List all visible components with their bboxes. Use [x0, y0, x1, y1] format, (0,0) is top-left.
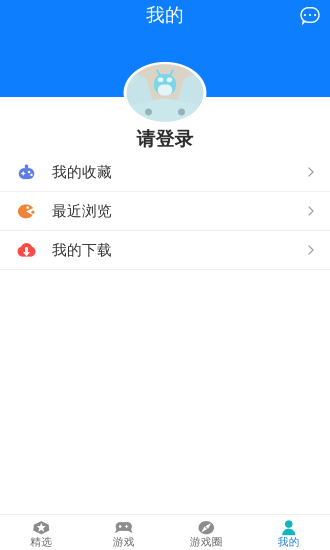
- button[interactable]: Messages: [300, 6, 330, 24]
- button[interactable]: 我的: [247, 515, 330, 550]
- button[interactable]: 游戏: [82, 515, 165, 550]
- staticText: 请登录: [136, 127, 193, 150]
- staticText: 最近浏览: [52, 202, 112, 220]
- button[interactable]: 最近浏览: [0, 192, 330, 231]
- button[interactable]: 精选: [0, 515, 82, 550]
- staticText: 精选: [30, 535, 52, 548]
- staticText: 我的: [278, 535, 300, 548]
- staticText: 游戏圈: [190, 535, 223, 548]
- staticText: 我的收藏: [52, 163, 112, 181]
- staticText: 我的下载: [52, 241, 112, 259]
- button[interactable]: 我的下载: [0, 231, 330, 270]
- staticText: 我的: [146, 3, 184, 26]
- staticText: 游戏: [113, 535, 135, 548]
- button[interactable]: 游戏圈: [165, 515, 247, 550]
- button[interactable]: 我的收藏: [0, 153, 330, 192]
